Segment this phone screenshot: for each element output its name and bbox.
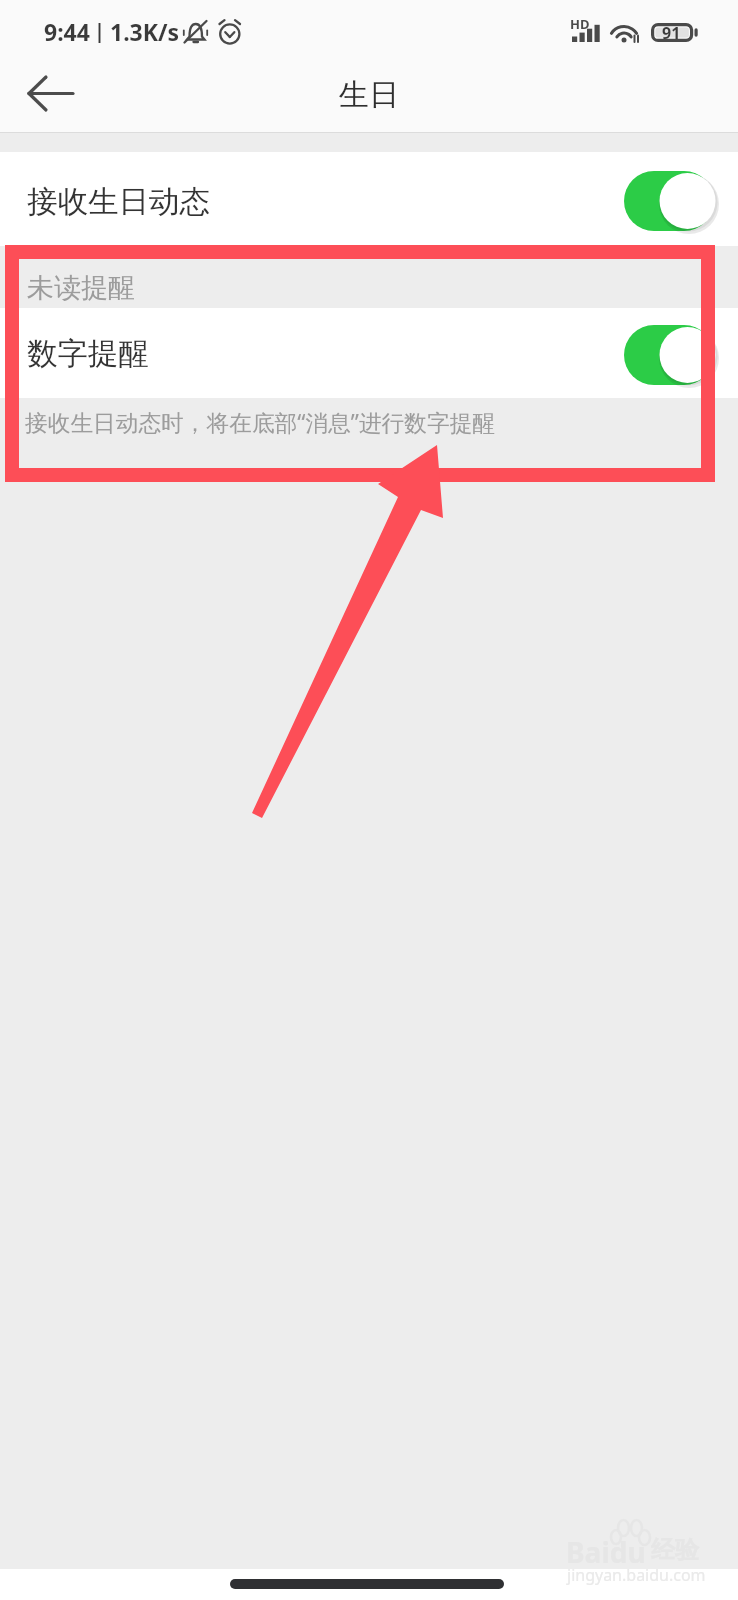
staticText: 接收生日动态时，将在底部“消息”进行数字提醒 xyxy=(25,407,496,438)
button[interactable]: Back xyxy=(8,66,93,132)
staticText: 接收生日动态 xyxy=(27,183,210,221)
button[interactable]: 接收生日动态 xyxy=(0,152,738,246)
staticText: 91 xyxy=(662,22,681,44)
button[interactable]: Toggle switch xyxy=(624,171,714,231)
button[interactable]: 数字提醒 xyxy=(0,308,738,398)
staticText: 9:44 xyxy=(44,16,90,47)
staticText: 数字提醒 xyxy=(27,335,149,373)
staticText: Baidu xyxy=(566,1533,646,1571)
staticText: | xyxy=(94,17,106,44)
staticText: 经验 xyxy=(651,1535,699,1565)
staticText: 1.3K/s xyxy=(110,16,180,47)
staticText: 未读提醒 xyxy=(27,271,135,305)
staticText: jingyan.baidu.com xyxy=(567,1564,706,1586)
button[interactable]: Toggle switch xyxy=(624,325,714,385)
staticText: 生日 xyxy=(339,76,399,114)
staticText: HD xyxy=(570,15,590,33)
